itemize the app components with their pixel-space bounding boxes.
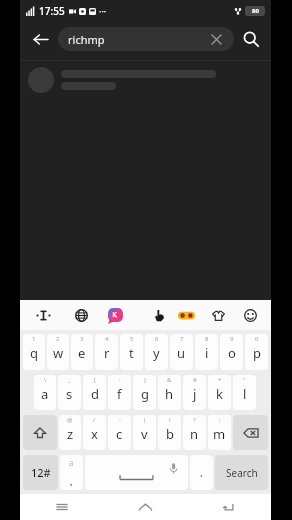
button[interactable]: a: [34, 375, 56, 410]
button[interactable]: Clothes: [207, 304, 229, 326]
staticText: 17:55: [39, 4, 65, 18]
button[interactable]: b: [158, 415, 181, 450]
staticText: c: [116, 425, 123, 443]
button[interactable]: s: [58, 375, 81, 410]
button[interactable]: z: [59, 415, 81, 450]
staticText: 8: [205, 335, 209, 343]
staticText: 4: [105, 335, 109, 343]
button[interactable]: i: [195, 334, 218, 370]
button[interactable]: j: [183, 375, 206, 410]
button[interactable]: Gesture: [148, 304, 170, 326]
staticText: 7: [180, 335, 184, 343]
staticText: b: [166, 425, 174, 443]
staticText: s: [66, 385, 73, 403]
button[interactable]: k: [208, 375, 231, 410]
staticText: q: [30, 344, 38, 362]
button[interactable]: Sticker app: [104, 304, 126, 326]
staticText: |: [143, 416, 147, 424]
button[interactable]: Language: [70, 304, 92, 326]
button[interactable]: Text cursor: [32, 304, 54, 326]
staticText: g: [141, 385, 149, 403]
button[interactable]: .: [190, 455, 213, 490]
button[interactable]: richmp: [58, 27, 234, 51]
button[interactable]: u: [170, 334, 193, 370]
staticText: 6: [155, 335, 159, 343]
button[interactable]: Recent apps: [20, 494, 103, 520]
button[interactable]: Back: [187, 494, 271, 520]
staticText: k: [216, 385, 223, 403]
staticText: ···: [99, 5, 107, 17]
button[interactable]: v: [133, 415, 156, 450]
button[interactable]: Shift: [23, 415, 57, 450]
button[interactable]: h: [158, 375, 181, 410]
staticText: t: [129, 344, 134, 362]
button[interactable]: o: [220, 334, 243, 370]
button[interactable]: l: [233, 375, 256, 410]
button[interactable]: r: [95, 334, 118, 370]
staticText: v: [141, 425, 148, 443]
staticText: n: [190, 425, 199, 443]
staticText: /: [93, 416, 96, 424]
staticText: *: [218, 376, 222, 384]
staticText: r: [104, 344, 110, 362]
staticText: ?: [193, 416, 196, 424]
staticText: w: [53, 344, 64, 362]
staticText: ": [243, 376, 246, 384]
button[interactable]: g: [133, 375, 156, 410]
staticText: u: [177, 344, 186, 362]
button[interactable]: n: [183, 415, 206, 450]
staticText: -: [119, 416, 121, 424]
button[interactable]: e: [71, 334, 93, 370]
button[interactable]: 12#: [23, 455, 58, 490]
staticText: d: [91, 385, 99, 403]
staticText: ,: [70, 475, 73, 487]
staticText: l: [243, 385, 247, 403]
button[interactable]: w: [47, 334, 69, 370]
staticText: p: [253, 344, 261, 362]
button[interactable]: Space: [85, 455, 188, 490]
button[interactable]: y: [145, 334, 168, 370]
button[interactable]: t: [120, 334, 143, 370]
staticText: h: [165, 385, 174, 403]
staticText: f: [117, 385, 122, 403]
staticText: 80: [252, 7, 259, 15]
staticText: y: [153, 344, 160, 362]
button[interactable]: Search: [237, 25, 265, 53]
button[interactable]: q: [23, 334, 45, 370]
staticText: a: [41, 385, 49, 403]
button[interactable]: c: [108, 415, 131, 450]
staticText: 0: [255, 335, 259, 343]
staticText: 9: [230, 335, 234, 343]
staticText: &: [167, 376, 172, 384]
staticText: (: [94, 376, 96, 384]
button[interactable]: m: [208, 415, 231, 450]
staticText: !: [169, 416, 171, 424]
button[interactable]: Back: [26, 25, 54, 53]
staticText: ;: [219, 416, 221, 424]
staticText: a: [69, 457, 74, 468]
button[interactable]: Backspace: [233, 415, 268, 450]
button[interactable]: d: [83, 375, 106, 410]
staticText: j: [193, 385, 197, 403]
button[interactable]: Games: [175, 304, 197, 326]
staticText: m: [213, 425, 226, 443]
staticText: Search: [226, 466, 258, 480]
staticText: x: [91, 425, 98, 443]
staticText: .: [200, 466, 203, 480]
staticText: i: [205, 344, 209, 362]
button[interactable]: a: [60, 455, 83, 490]
button[interactable]: Home: [103, 494, 187, 520]
staticText: @: [67, 416, 73, 424]
button[interactable]: f: [108, 375, 131, 410]
staticText: 5: [130, 335, 134, 343]
staticText: o: [228, 344, 236, 362]
button[interactable]: Clear: [208, 31, 224, 47]
staticText: #: [193, 376, 197, 384]
button[interactable]: Emoji: [239, 304, 261, 326]
staticText: richmp: [68, 32, 105, 47]
staticText: 1: [32, 335, 36, 343]
button[interactable]: Search: [215, 455, 268, 490]
button[interactable]: x: [83, 415, 106, 450]
staticText: ): [144, 376, 146, 384]
button[interactable]: p: [245, 334, 268, 370]
